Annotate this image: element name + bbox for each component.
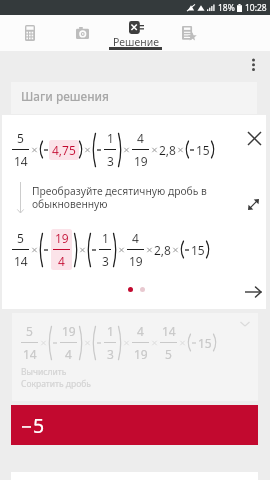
- staticText: Преобразуйте десятичную дробь в обыкнове…: [32, 184, 214, 211]
- staticText: 19: [62, 323, 76, 339]
- button[interactable]: Calculator: [3, 15, 56, 51]
- staticText: 14: [14, 153, 28, 169]
- staticText: 10:28: [245, 2, 267, 14]
- staticText: Сократить дробь: [21, 378, 91, 390]
- staticText: 19: [134, 153, 148, 169]
- staticText: 5: [33, 412, 45, 439]
- staticText: 5: [17, 230, 24, 246]
- staticText: 1: [107, 323, 114, 339]
- staticText: 19: [129, 253, 143, 269]
- staticText: 5: [17, 130, 24, 146]
- button[interactable]: Next step: [240, 279, 266, 305]
- button[interactable]: Saved: [162, 15, 215, 51]
- staticText: 15: [196, 142, 210, 158]
- staticText: 4: [65, 346, 72, 362]
- button[interactable]: Collapse: [235, 314, 255, 334]
- staticText: 5: [26, 323, 33, 339]
- staticText: 2,8: [154, 242, 171, 258]
- staticText: 4: [137, 130, 144, 146]
- staticText: 18%: [218, 2, 235, 14]
- button[interactable]: More options: [243, 54, 263, 74]
- staticText: Шаги решения: [21, 88, 109, 104]
- staticText: 4: [137, 323, 144, 339]
- staticText: 19: [134, 346, 148, 362]
- staticText: 1: [107, 130, 114, 146]
- staticText: 3: [107, 346, 114, 362]
- staticText: 3: [102, 253, 109, 269]
- staticText: 14: [23, 346, 37, 362]
- staticText: 4,75: [52, 142, 76, 158]
- staticText: 1: [102, 230, 109, 246]
- staticText: 19: [55, 230, 69, 246]
- button[interactable]: Camera: [56, 15, 109, 51]
- staticText: 3: [107, 153, 114, 169]
- staticText: 4: [58, 253, 65, 269]
- button[interactable]: Expand: [240, 191, 266, 217]
- staticText: 14: [162, 323, 176, 339]
- staticText: Решение: [113, 35, 159, 49]
- button[interactable]: Close: [242, 126, 266, 150]
- staticText: Вычислить: [21, 366, 67, 378]
- staticText: 5: [165, 346, 172, 362]
- staticText: 15: [198, 335, 212, 351]
- staticText: 4: [132, 230, 139, 246]
- staticText: 15: [191, 242, 205, 258]
- staticText: 14: [14, 253, 28, 269]
- staticText: 2,8: [159, 142, 176, 158]
- button[interactable]: Решение: [109, 15, 162, 51]
